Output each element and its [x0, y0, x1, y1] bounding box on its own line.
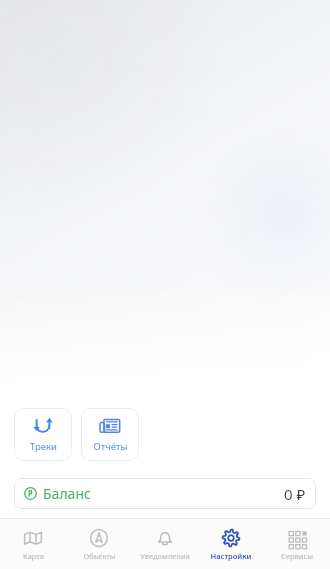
button[interactable]: Уведомления — [132, 519, 198, 569]
button[interactable]: Баланс — [14, 478, 316, 509]
button[interactable]: Объекты — [66, 519, 132, 569]
staticText: Баланс — [43, 484, 91, 503]
button[interactable]: Отчёты — [81, 408, 139, 461]
staticText: Отчёты — [93, 440, 128, 453]
staticText: Уведомления — [140, 551, 190, 561]
button[interactable]: Настройки — [198, 519, 264, 569]
staticText: Сервисы — [281, 551, 313, 561]
button[interactable]: Карта — [0, 519, 66, 569]
staticText: Карта — [23, 551, 44, 561]
button[interactable]: Сервисы — [264, 519, 330, 569]
staticText: Объекты — [83, 551, 116, 561]
staticText: Настройки — [210, 551, 252, 561]
button[interactable]: Треки — [14, 408, 72, 461]
staticText: 0 ₽ — [284, 484, 306, 504]
staticText: Треки — [30, 440, 57, 453]
